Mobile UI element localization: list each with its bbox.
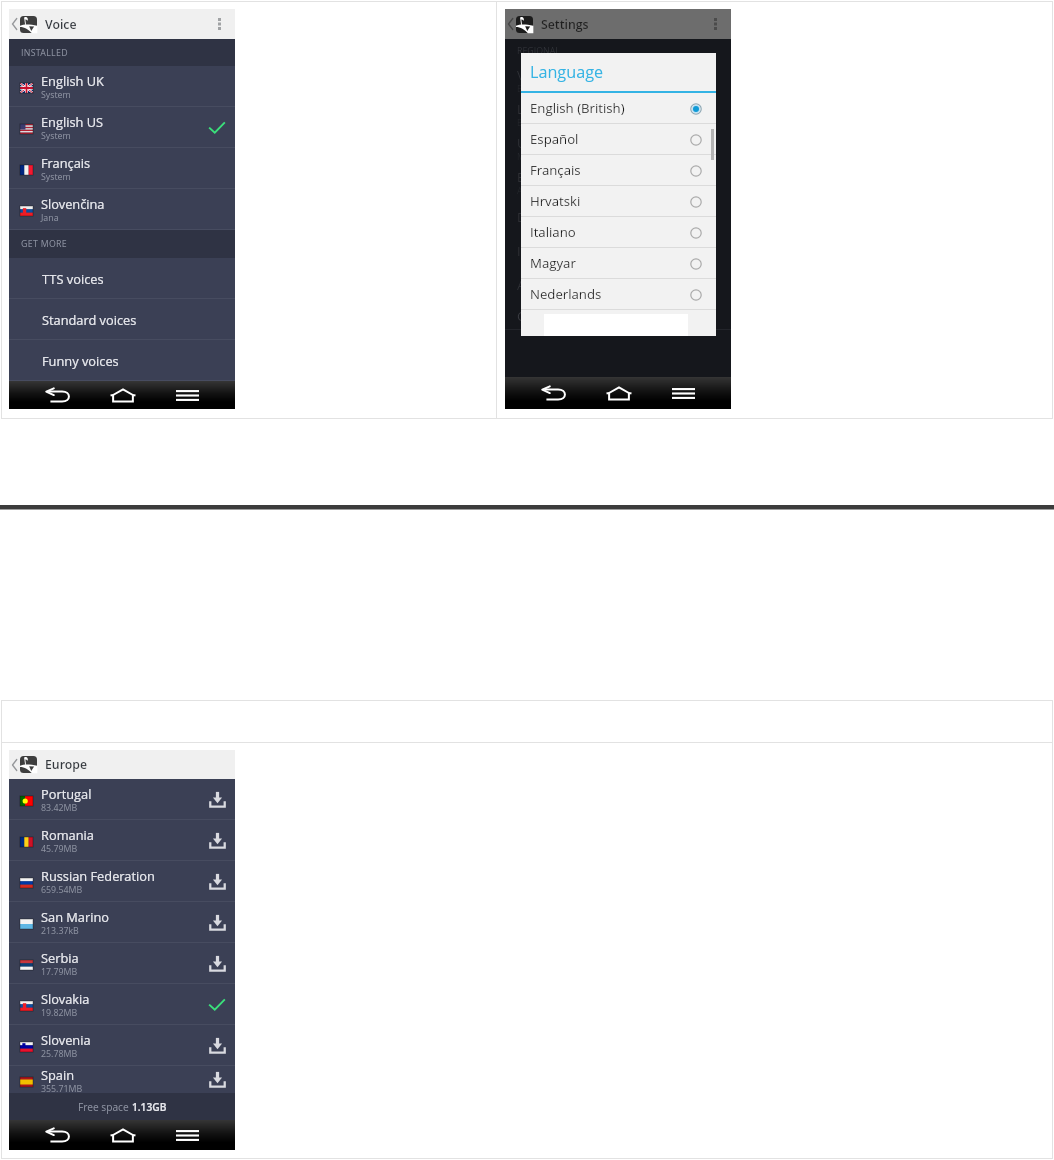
button[interactable]: Language xyxy=(505,97,731,131)
button[interactable]: TTS voices xyxy=(9,258,235,298)
staticText: 213.37kB xyxy=(41,925,79,937)
button[interactable]: Enable xyxy=(505,165,731,199)
button[interactable]: Romania xyxy=(9,820,235,860)
button[interactable]: Home xyxy=(106,381,140,409)
button[interactable]: English (British) xyxy=(521,93,716,123)
staticText: Voice xyxy=(45,16,77,33)
staticText: About xyxy=(517,276,554,293)
button[interactable]: English UK xyxy=(9,66,235,106)
staticText: English US xyxy=(41,113,104,130)
staticText: 25.78MB xyxy=(41,1048,78,1060)
staticText: System xyxy=(41,89,71,101)
staticText: Français xyxy=(41,154,91,171)
staticText: Info xyxy=(517,242,541,259)
staticText: English (British) xyxy=(517,117,581,129)
button[interactable]: More options xyxy=(705,9,725,39)
staticText: Russian Federation xyxy=(41,867,155,884)
button[interactable]: Français xyxy=(9,148,235,188)
staticText: Metric xyxy=(517,151,543,163)
staticText: Enable xyxy=(517,168,558,185)
staticText: Jana xyxy=(41,212,59,224)
button[interactable]: Slovakia xyxy=(9,984,235,1024)
staticText: 659.54MB xyxy=(41,884,83,896)
button[interactable]: Standard voices xyxy=(9,299,235,339)
button[interactable]: Navigate up xyxy=(505,9,516,39)
button[interactable]: Français xyxy=(521,155,716,185)
staticText: Slovakia xyxy=(41,990,90,1007)
staticText: 45.79MB xyxy=(41,843,78,855)
staticText: Copyright xyxy=(517,307,575,324)
staticText: Always xyxy=(517,185,546,197)
button[interactable]: Voice xyxy=(505,63,731,97)
button[interactable]: Russian Federation xyxy=(9,861,235,901)
button[interactable]: Italiano xyxy=(521,217,716,247)
staticText: English UK xyxy=(41,72,104,89)
button[interactable]: English US xyxy=(9,107,235,147)
staticText: Hrvatski xyxy=(530,192,581,210)
staticText: Funny voices xyxy=(42,352,119,369)
staticText: Display xyxy=(517,208,561,225)
staticText: Slovenia xyxy=(41,1031,91,1048)
button[interactable]: Recent apps xyxy=(170,1120,204,1150)
button[interactable]: Navigate up xyxy=(9,750,20,779)
staticText: 355.71MB xyxy=(41,1083,83,1093)
button[interactable]: Slovenia xyxy=(9,1025,235,1065)
staticText: Standard voices xyxy=(42,311,137,328)
staticText: GET MORE xyxy=(21,238,67,250)
button[interactable]: San Marino xyxy=(9,902,235,942)
button[interactable]: Recent apps xyxy=(666,377,700,409)
button[interactable]: Back xyxy=(42,381,76,409)
button[interactable]: Portugal xyxy=(9,779,235,819)
button[interactable]: Hrvatski xyxy=(521,186,716,216)
staticText: Slovenčina xyxy=(41,195,105,212)
staticText: English (British) xyxy=(530,99,625,117)
staticText: 17.79MB xyxy=(41,966,78,978)
staticText: 19.82MB xyxy=(41,1007,78,1019)
button[interactable]: Back xyxy=(42,1120,76,1150)
button[interactable]: Units xyxy=(505,131,731,165)
button[interactable]: Slovenčina xyxy=(9,189,235,229)
staticText: Voice xyxy=(517,66,549,83)
staticText: System xyxy=(41,130,71,142)
staticText: Nederlands xyxy=(530,285,602,303)
staticText: Units xyxy=(517,134,549,151)
button[interactable]: Navigate up xyxy=(9,9,20,39)
button[interactable]: Spain xyxy=(9,1066,235,1093)
button[interactable]: Back xyxy=(538,377,572,409)
staticText: Magyar xyxy=(530,254,576,272)
button[interactable]: More options xyxy=(209,9,229,39)
button[interactable]: Nederlands xyxy=(521,279,716,309)
button[interactable]: Funny voices xyxy=(9,340,235,380)
staticText: 1.13GB xyxy=(132,1100,167,1114)
staticText: Italiano xyxy=(530,223,576,241)
staticText: Language xyxy=(530,61,604,83)
staticText: English US xyxy=(517,83,560,95)
button[interactable]: Serbia xyxy=(9,943,235,983)
button[interactable]: Display xyxy=(505,199,731,233)
staticText: REGIONAL xyxy=(517,45,560,57)
button[interactable]: Home xyxy=(602,377,636,409)
staticText: INSTALLED xyxy=(21,47,68,59)
staticText: San Marino xyxy=(41,908,110,925)
staticText: 83.42MB xyxy=(41,802,78,814)
staticText: Spain xyxy=(41,1066,75,1083)
button[interactable]: Español xyxy=(521,124,716,154)
staticText: Serbia xyxy=(41,949,79,966)
button[interactable]: Magyar xyxy=(521,248,716,278)
staticText: Romania xyxy=(41,826,94,843)
staticText: Portugal xyxy=(41,785,92,802)
button[interactable]: Recent apps xyxy=(170,381,204,409)
button[interactable]: About xyxy=(505,267,731,301)
staticText: Español xyxy=(530,130,579,148)
button[interactable]: Home xyxy=(106,1120,140,1150)
staticText: Settings xyxy=(541,16,589,33)
staticText: Free space xyxy=(78,1100,132,1114)
staticText: Language xyxy=(517,100,575,117)
staticText: System xyxy=(41,171,71,183)
staticText: Français xyxy=(530,161,581,179)
button[interactable]: Info xyxy=(505,233,731,267)
staticText: Europe xyxy=(45,756,87,773)
staticText: TTS voices xyxy=(42,270,104,287)
